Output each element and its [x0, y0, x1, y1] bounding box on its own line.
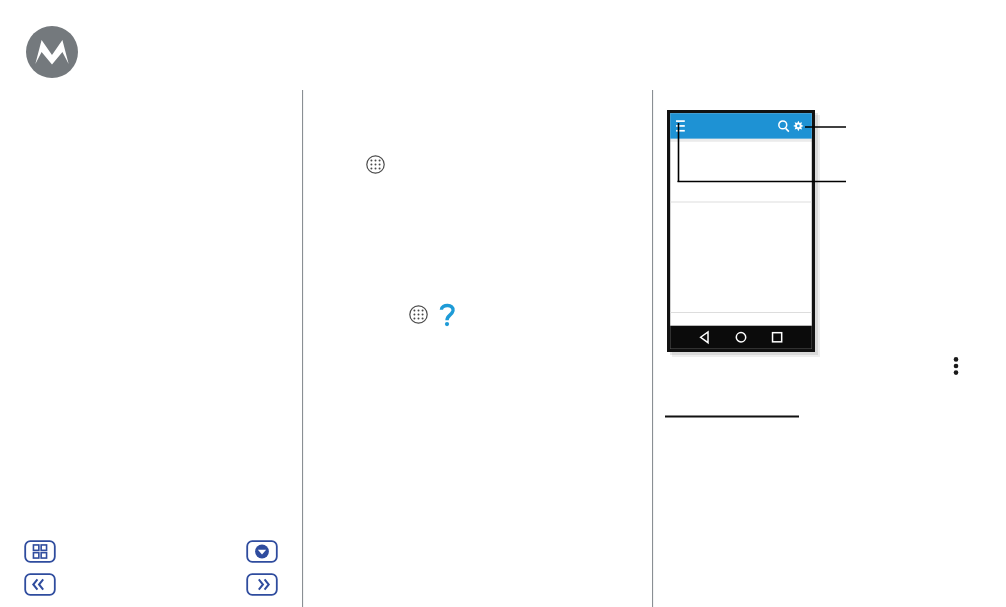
button[interactable]: Down	[246, 540, 278, 563]
button[interactable]: Apps	[409, 305, 428, 324]
button[interactable]: More options	[949, 356, 963, 376]
button[interactable]: Help	[437, 302, 457, 326]
button[interactable]: Previous	[24, 573, 56, 596]
button[interactable]: Next	[246, 573, 278, 596]
button[interactable]: Apps	[366, 155, 385, 174]
button[interactable]: Motorola logo	[26, 26, 78, 78]
button[interactable]: Menu	[24, 540, 56, 563]
